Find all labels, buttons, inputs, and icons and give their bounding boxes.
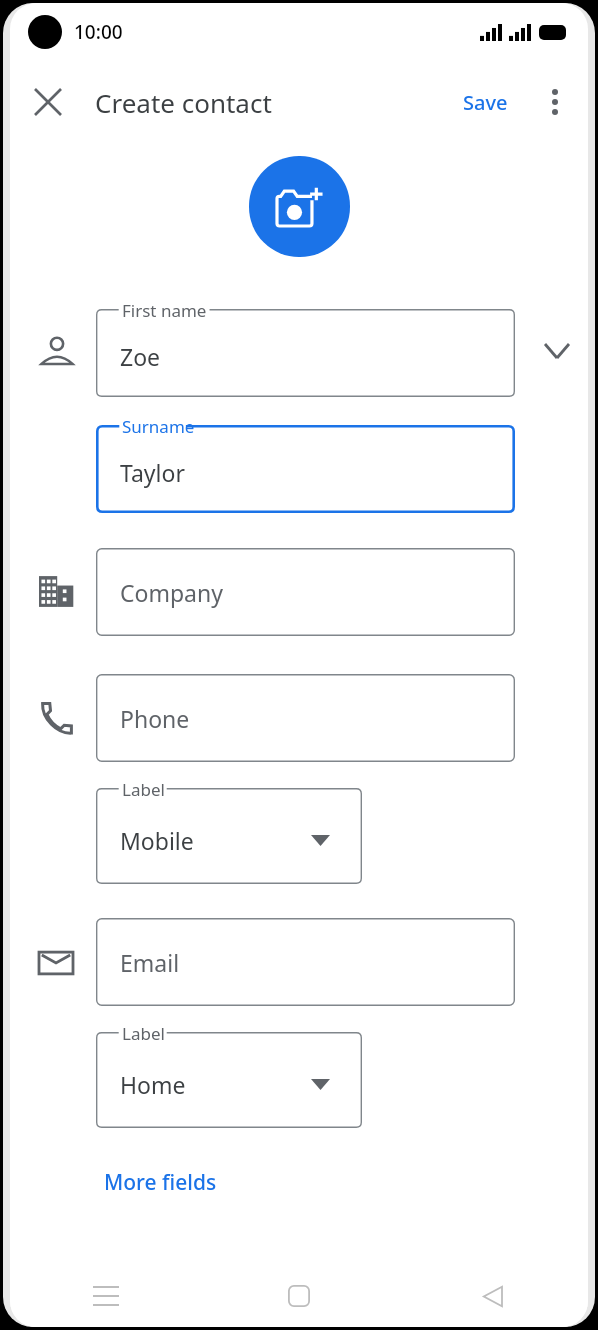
staticText: Home xyxy=(120,1069,186,1100)
button[interactable]: Email xyxy=(96,918,515,1006)
button[interactable]: First name xyxy=(96,309,515,397)
staticText: Label xyxy=(122,1022,165,1045)
staticText: Mobile xyxy=(120,825,194,856)
button[interactable]: Label xyxy=(96,1032,362,1128)
button[interactable]: Add photo xyxy=(249,156,350,257)
button[interactable]: Label xyxy=(96,788,362,884)
staticText: Zoe xyxy=(120,341,161,372)
staticText: Surname xyxy=(122,415,195,438)
button[interactable]: Expand name fields xyxy=(537,331,577,371)
staticText: First name xyxy=(122,299,207,322)
staticText: More fields xyxy=(104,1168,217,1197)
staticText: Save xyxy=(463,89,508,116)
button[interactable]: Surname xyxy=(96,425,515,513)
staticText: Phone xyxy=(120,703,190,734)
button[interactable]: Save xyxy=(455,81,516,124)
staticText: Email xyxy=(120,947,180,978)
button[interactable]: Close xyxy=(24,78,72,126)
button[interactable]: Back xyxy=(395,1265,588,1327)
staticText: Company xyxy=(120,577,223,608)
button[interactable]: Recents xyxy=(10,1265,202,1327)
button[interactable]: Phone xyxy=(96,674,515,762)
staticText: Label xyxy=(122,778,165,801)
button[interactable]: Home xyxy=(202,1265,395,1327)
staticText: 10:00 xyxy=(74,19,123,45)
button[interactable]: More fields xyxy=(96,1162,225,1203)
staticText: Create contact xyxy=(95,85,272,120)
button[interactable]: Company xyxy=(96,548,515,636)
staticText: Taylor xyxy=(120,457,185,488)
button[interactable]: More options xyxy=(532,79,578,125)
